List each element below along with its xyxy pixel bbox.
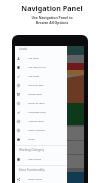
staticText: Profile <box>16 65 24 69</box>
staticText: Follow Up Leads <box>28 102 45 105</box>
button[interactable]: Ongoing Leads <box>15 81 67 90</box>
staticText: Leads <box>19 47 28 51</box>
button[interactable]: Payers <box>15 135 67 144</box>
staticText: View Update <box>28 158 41 161</box>
staticText: Add Leads <box>28 57 39 60</box>
staticText: Ongoing Leads <box>28 84 44 87</box>
staticText: Consultant <box>19 145 32 148</box>
button[interactable]: Assigned Leads <box>15 117 67 126</box>
staticText: Settings <box>16 159 26 162</box>
button[interactable]: View Update <box>15 155 67 164</box>
button[interactable]: Completed Leads <box>15 108 67 117</box>
staticText: Leads Complaint <box>28 129 46 132</box>
staticText: Working Category <box>19 148 44 152</box>
staticText: Lorem ipsum dolor sit amet 24 <box>16 89 32 98</box>
staticText: Payers <box>28 138 35 141</box>
button[interactable]: New Leads <box>15 72 67 81</box>
staticText: Sunshine <box>19 131 30 134</box>
button[interactable]: Leads Complaint <box>15 126 67 135</box>
button[interactable]: Invite Friends <box>15 175 67 183</box>
staticText: Invite Friends <box>28 178 42 181</box>
staticText: Completed Leads <box>28 111 46 114</box>
staticText: Assigned Leads <box>28 120 44 123</box>
staticText: Add Leads By File <box>28 66 46 69</box>
button[interactable]: Add Leads By File <box>15 63 67 72</box>
staticText: Extra Functionality <box>19 168 45 172</box>
staticText: New Leads <box>28 75 40 78</box>
button[interactable]: Denied Leads <box>15 90 67 99</box>
staticText: Use Navigation Panel to Browse All Optio… <box>31 15 73 25</box>
button[interactable]: Add Leads <box>15 54 67 63</box>
staticText: Denied Leads <box>28 93 42 96</box>
button[interactable]: Follow Up Leads <box>15 99 67 108</box>
staticText: Navigation Panel <box>21 3 83 13</box>
